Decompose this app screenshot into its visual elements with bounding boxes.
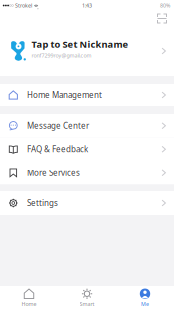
staticText: 80% <box>160 2 170 9</box>
staticText: 1:43 <box>82 2 92 9</box>
staticText: Home <box>21 300 36 307</box>
button[interactable]: Message Center <box>0 114 174 137</box>
button[interactable]: Scan QR code <box>154 11 170 26</box>
staticText: Message Center <box>27 120 89 131</box>
staticText: Tap to Set Nickname <box>31 38 128 50</box>
staticText: Me <box>141 300 149 307</box>
button[interactable]: Tap to Set Nickname <box>0 26 174 76</box>
staticText: Strokel <box>15 2 32 9</box>
button[interactable]: Settings <box>0 191 174 215</box>
staticText: Settings <box>27 198 58 208</box>
button[interactable]: Home <box>0 286 58 310</box>
staticText: More Services <box>27 167 80 178</box>
button[interactable]: Home Management <box>0 84 174 106</box>
button[interactable]: FAQ & Feedback <box>0 137 174 161</box>
staticText: Home Management <box>27 90 102 100</box>
button[interactable]: Me <box>116 286 174 310</box>
staticText: FAQ & Feedback <box>27 144 88 154</box>
button[interactable]: More Services <box>0 161 174 184</box>
staticText: ronf7299roy@gmail.com <box>31 52 91 59</box>
button[interactable]: Smart <box>58 286 116 310</box>
staticText: Smart <box>79 300 94 307</box>
